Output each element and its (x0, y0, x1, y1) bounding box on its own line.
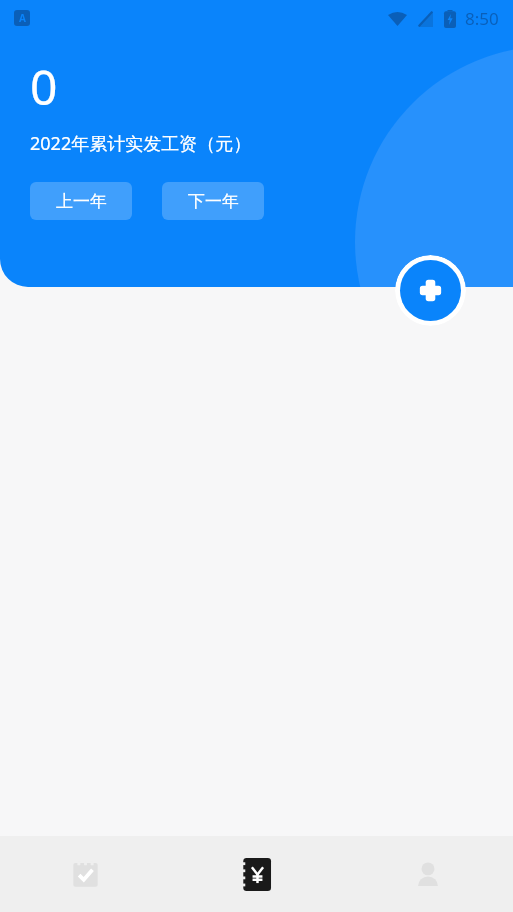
button[interactable]: 下一年 (162, 182, 264, 220)
staticText: 上一年 (56, 191, 107, 212)
button[interactable]: Salary ledger (171, 836, 342, 912)
button[interactable]: Add record (395, 255, 466, 326)
button[interactable]: 上一年 (30, 182, 132, 220)
staticText: A (19, 11, 26, 25)
staticText: 下一年 (188, 191, 239, 212)
staticText: 8:50 (465, 7, 499, 30)
staticText: 0 (30, 54, 58, 119)
staticText: 2022年累计实发工资（元） (30, 131, 252, 156)
